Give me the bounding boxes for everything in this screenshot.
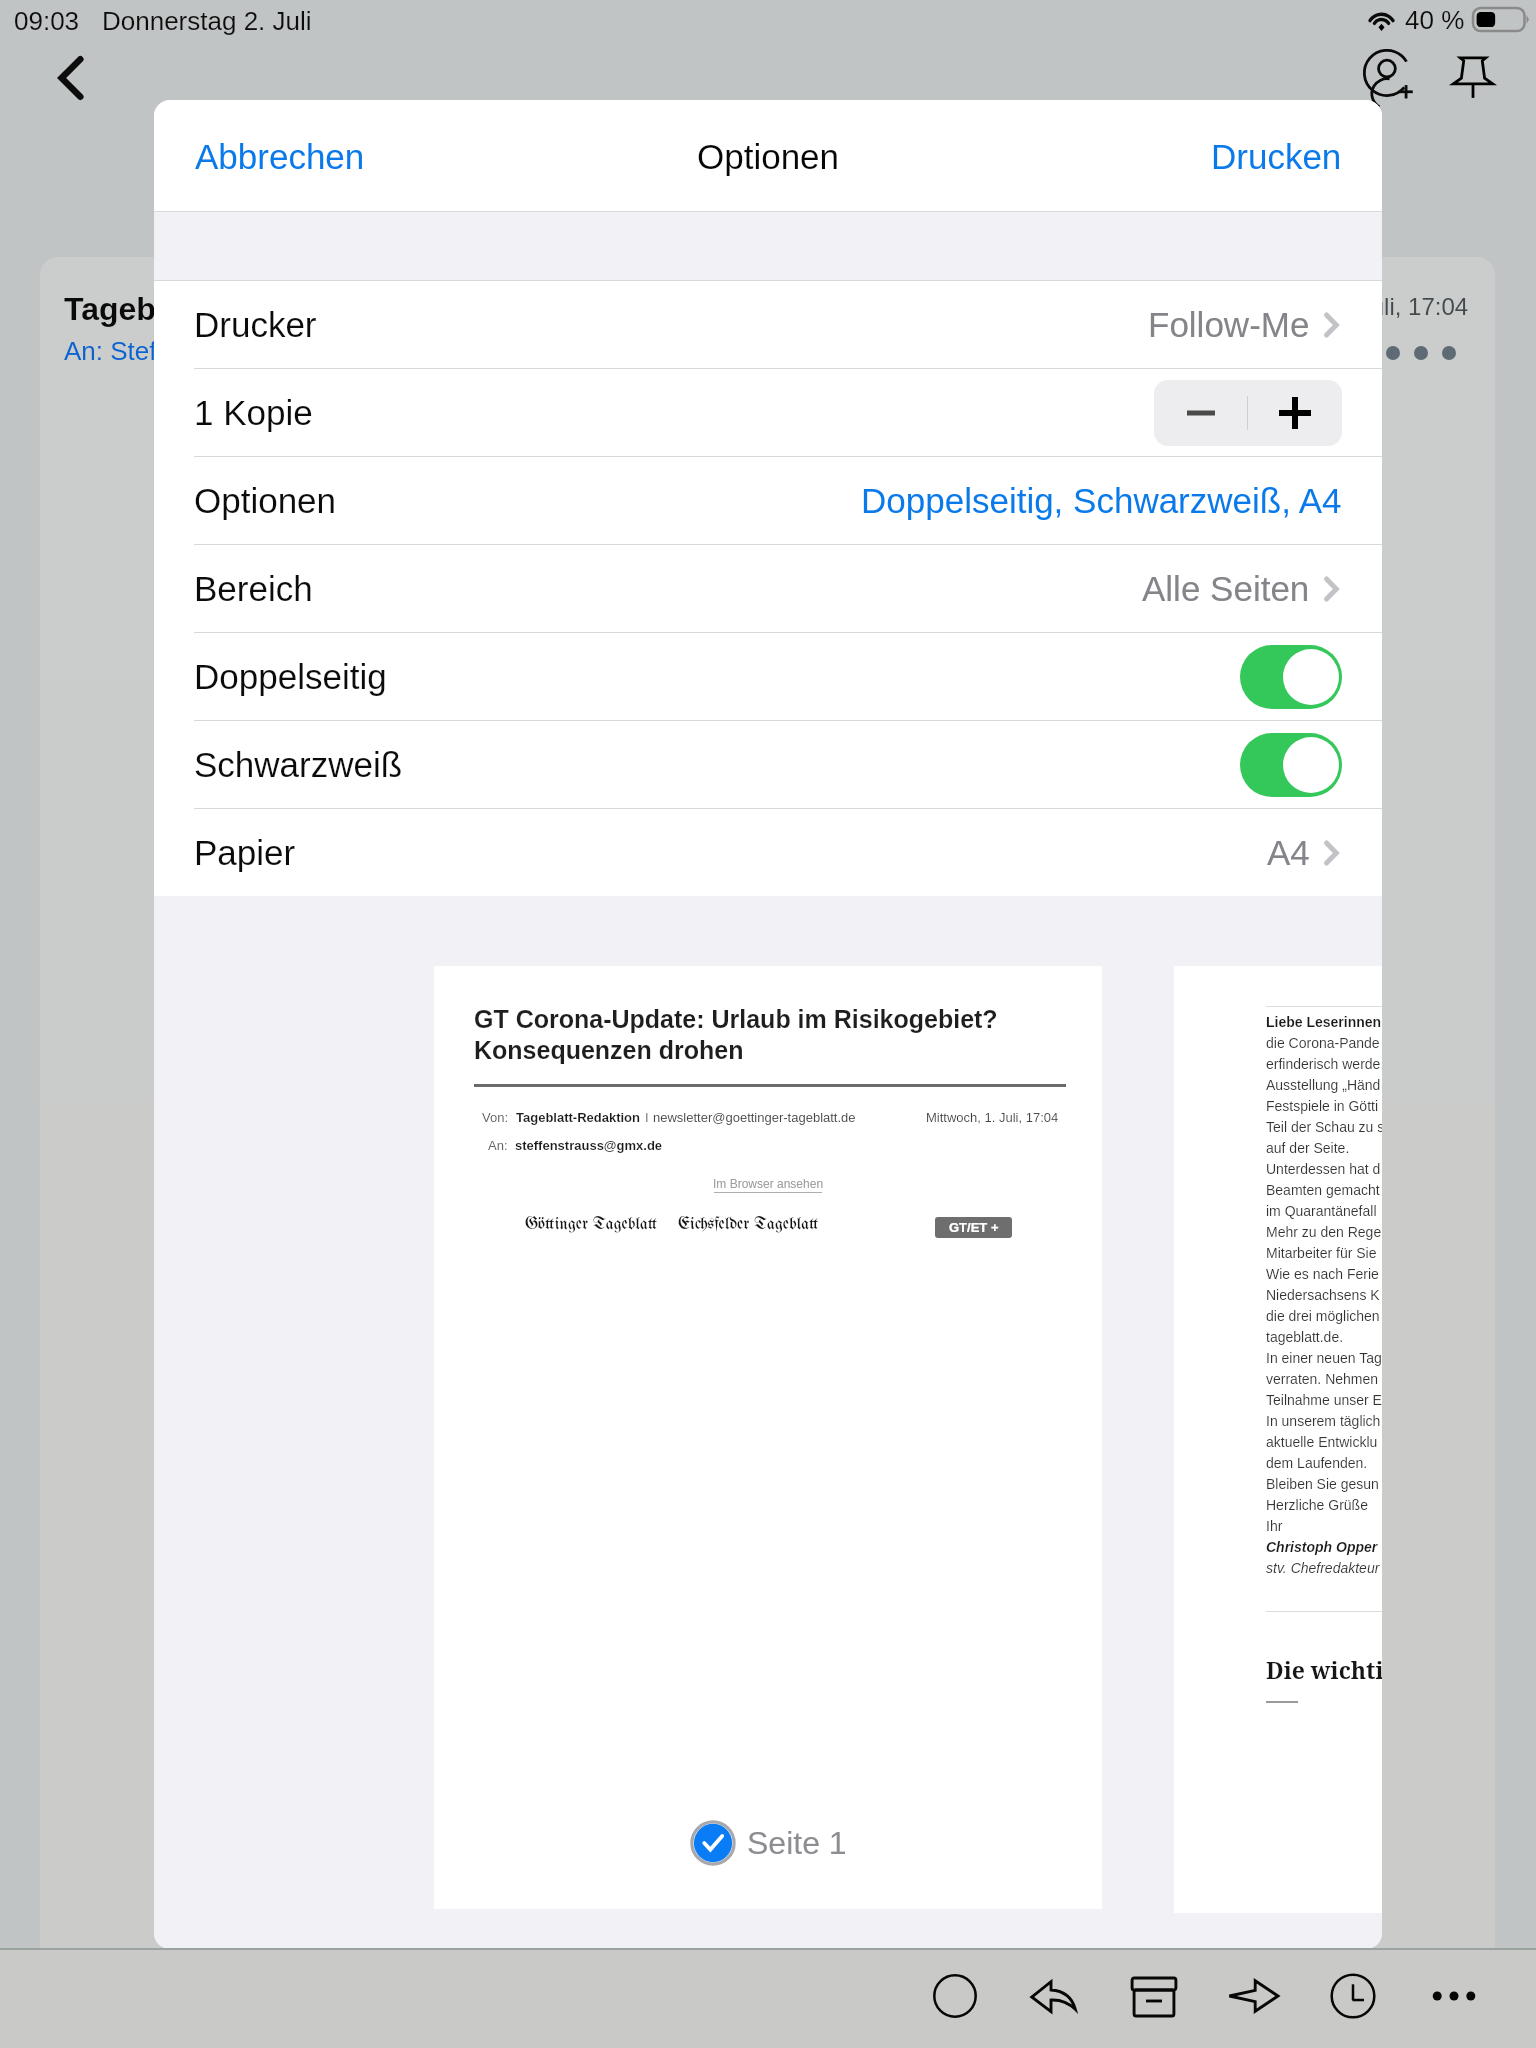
staticText: verraten. Nehmen (1266, 1371, 1379, 1387)
staticText: Doppelseitig, Schwarzweiß, A4 (861, 481, 1342, 520)
staticText: Alle Seiten (1142, 569, 1310, 608)
staticText: Wie es nach Ferie (1266, 1266, 1379, 1282)
staticText: A4 (1267, 833, 1310, 872)
staticText: I (645, 1110, 649, 1125)
staticText: Bleiben Sie gesun (1266, 1476, 1379, 1492)
staticText: Papier (194, 833, 296, 872)
staticText: Im Browser ansehen (713, 1177, 824, 1190)
button[interactable]: Seite 1 (691, 1821, 847, 1865)
staticText: Ausstellung „Händ (1266, 1077, 1381, 1093)
staticText: Doppelseitig (194, 657, 387, 696)
staticText: Seite 1 (747, 1825, 847, 1861)
staticText: Tageblatt-Redaktion (64, 291, 370, 327)
staticText: Festspiele in Götti (1266, 1098, 1379, 1114)
staticText: 40 % (1405, 5, 1465, 34)
staticText: Von: (482, 1110, 509, 1125)
staticText: An: (488, 1138, 508, 1153)
staticText: GT/ET + (949, 1220, 999, 1235)
button[interactable] (1240, 645, 1342, 709)
staticText: tageblatt.de. (1266, 1329, 1344, 1345)
staticText: Follow-Me (1148, 305, 1310, 344)
button[interactable]: Zurück (46, 52, 98, 104)
staticText: Bereich (194, 569, 313, 608)
staticText: Drucker (194, 305, 317, 344)
button[interactable]: Schwarzweiß (154, 721, 1382, 808)
staticText: Eichsfelder Tageblatt (678, 1216, 819, 1234)
staticText: Die wichtigs (1266, 1654, 1382, 1685)
button[interactable]: Anheften (1444, 48, 1502, 106)
staticText: im Quarantänefall (1266, 1203, 1377, 1219)
staticText: die drei möglichen (1266, 1308, 1380, 1324)
staticText: Ihr (1266, 1518, 1283, 1534)
staticText: Abbrechen (195, 137, 365, 176)
staticText: In unserem täglich (1266, 1413, 1381, 1429)
staticText: Mittwoch, 1. Juli, 17:04 (1224, 293, 1469, 320)
staticText: Beamten gemacht (1266, 1182, 1380, 1198)
staticText: dem Laufenden. (1266, 1455, 1368, 1471)
staticText: newsletter@goettinger-tageblatt.de (653, 1110, 856, 1125)
button[interactable]: Papier (154, 809, 1382, 896)
staticText: Drucken (1211, 137, 1342, 176)
staticText: stv. Chefredakteur (1266, 1560, 1380, 1576)
staticText: aktuelle Entwicklu (1266, 1434, 1378, 1450)
staticText: 1 Kopie (194, 393, 313, 432)
staticText: Mittwoch, 1. Juli, 17:04 (926, 1110, 1059, 1125)
staticText: Teilnahme unser E (1266, 1392, 1382, 1408)
button[interactable]: Person hinzufügen (1362, 48, 1420, 106)
staticText: Liebe Leserinnen (1266, 1014, 1382, 1030)
staticText: Herzliche Grüße (1266, 1497, 1368, 1513)
staticText: Niedersachsens K (1266, 1287, 1380, 1303)
staticText: auf der Seite. (1266, 1140, 1350, 1156)
staticText: Christoph Opper (1266, 1539, 1378, 1555)
staticText: An: Steffen Strauss (64, 336, 288, 365)
button[interactable]: Abbrechen (187, 129, 373, 184)
button[interactable] (1240, 733, 1342, 797)
staticText: die Corona-Pande (1266, 1035, 1380, 1051)
button[interactable]: Mehr (1248, 380, 1342, 446)
button[interactable]: Doppelseitig (154, 633, 1382, 720)
button[interactable]: Markieren (925, 1966, 985, 2026)
staticText: steffenstrauss@gmx.de (515, 1138, 663, 1153)
staticText: Mitarbeiter für Sie (1266, 1245, 1377, 1261)
button[interactable]: Antworten (1023, 1966, 1083, 2026)
button[interactable]: Erinnern (1323, 1966, 1383, 2026)
button[interactable]: Drucken (1203, 129, 1350, 184)
button[interactable]: Weniger (1154, 380, 1247, 446)
staticText: erfinderisch werde (1266, 1056, 1381, 1072)
staticText: Unterdessen hat d (1266, 1161, 1381, 1177)
staticText: Tageblatt-Redaktion (516, 1110, 640, 1125)
staticText: Optionen (194, 481, 337, 520)
button[interactable]: Archivieren (1124, 1966, 1184, 2026)
button[interactable]: Bereich (154, 545, 1382, 632)
staticText: Schwarzweiß (194, 745, 403, 784)
staticText: 09:03 (14, 6, 80, 35)
staticText: Mehr zu den Rege (1266, 1224, 1382, 1240)
button[interactable]: Drucker (154, 281, 1382, 368)
staticText: Teil der Schau zu s (1266, 1119, 1382, 1135)
staticText: Donnerstag 2. Juli (102, 6, 312, 35)
button[interactable]: Weiterleiten (1224, 1966, 1284, 2026)
staticText: In einer neuen Tag (1266, 1350, 1382, 1366)
button[interactable]: 1 Kopie (154, 369, 1382, 456)
staticText: Göttinger Tageblatt (525, 1216, 658, 1234)
staticText: Optionen (697, 137, 840, 176)
button[interactable]: Tageblatt-Redaktion (40, 257, 1495, 1948)
staticText: GT Corona-Update: Urlaub im Risikogebiet… (474, 1005, 998, 1033)
staticText: Konsequenzen drohen (474, 1036, 744, 1064)
button[interactable]: Mehr (1424, 1966, 1484, 2026)
button[interactable]: Optionen (154, 457, 1382, 544)
